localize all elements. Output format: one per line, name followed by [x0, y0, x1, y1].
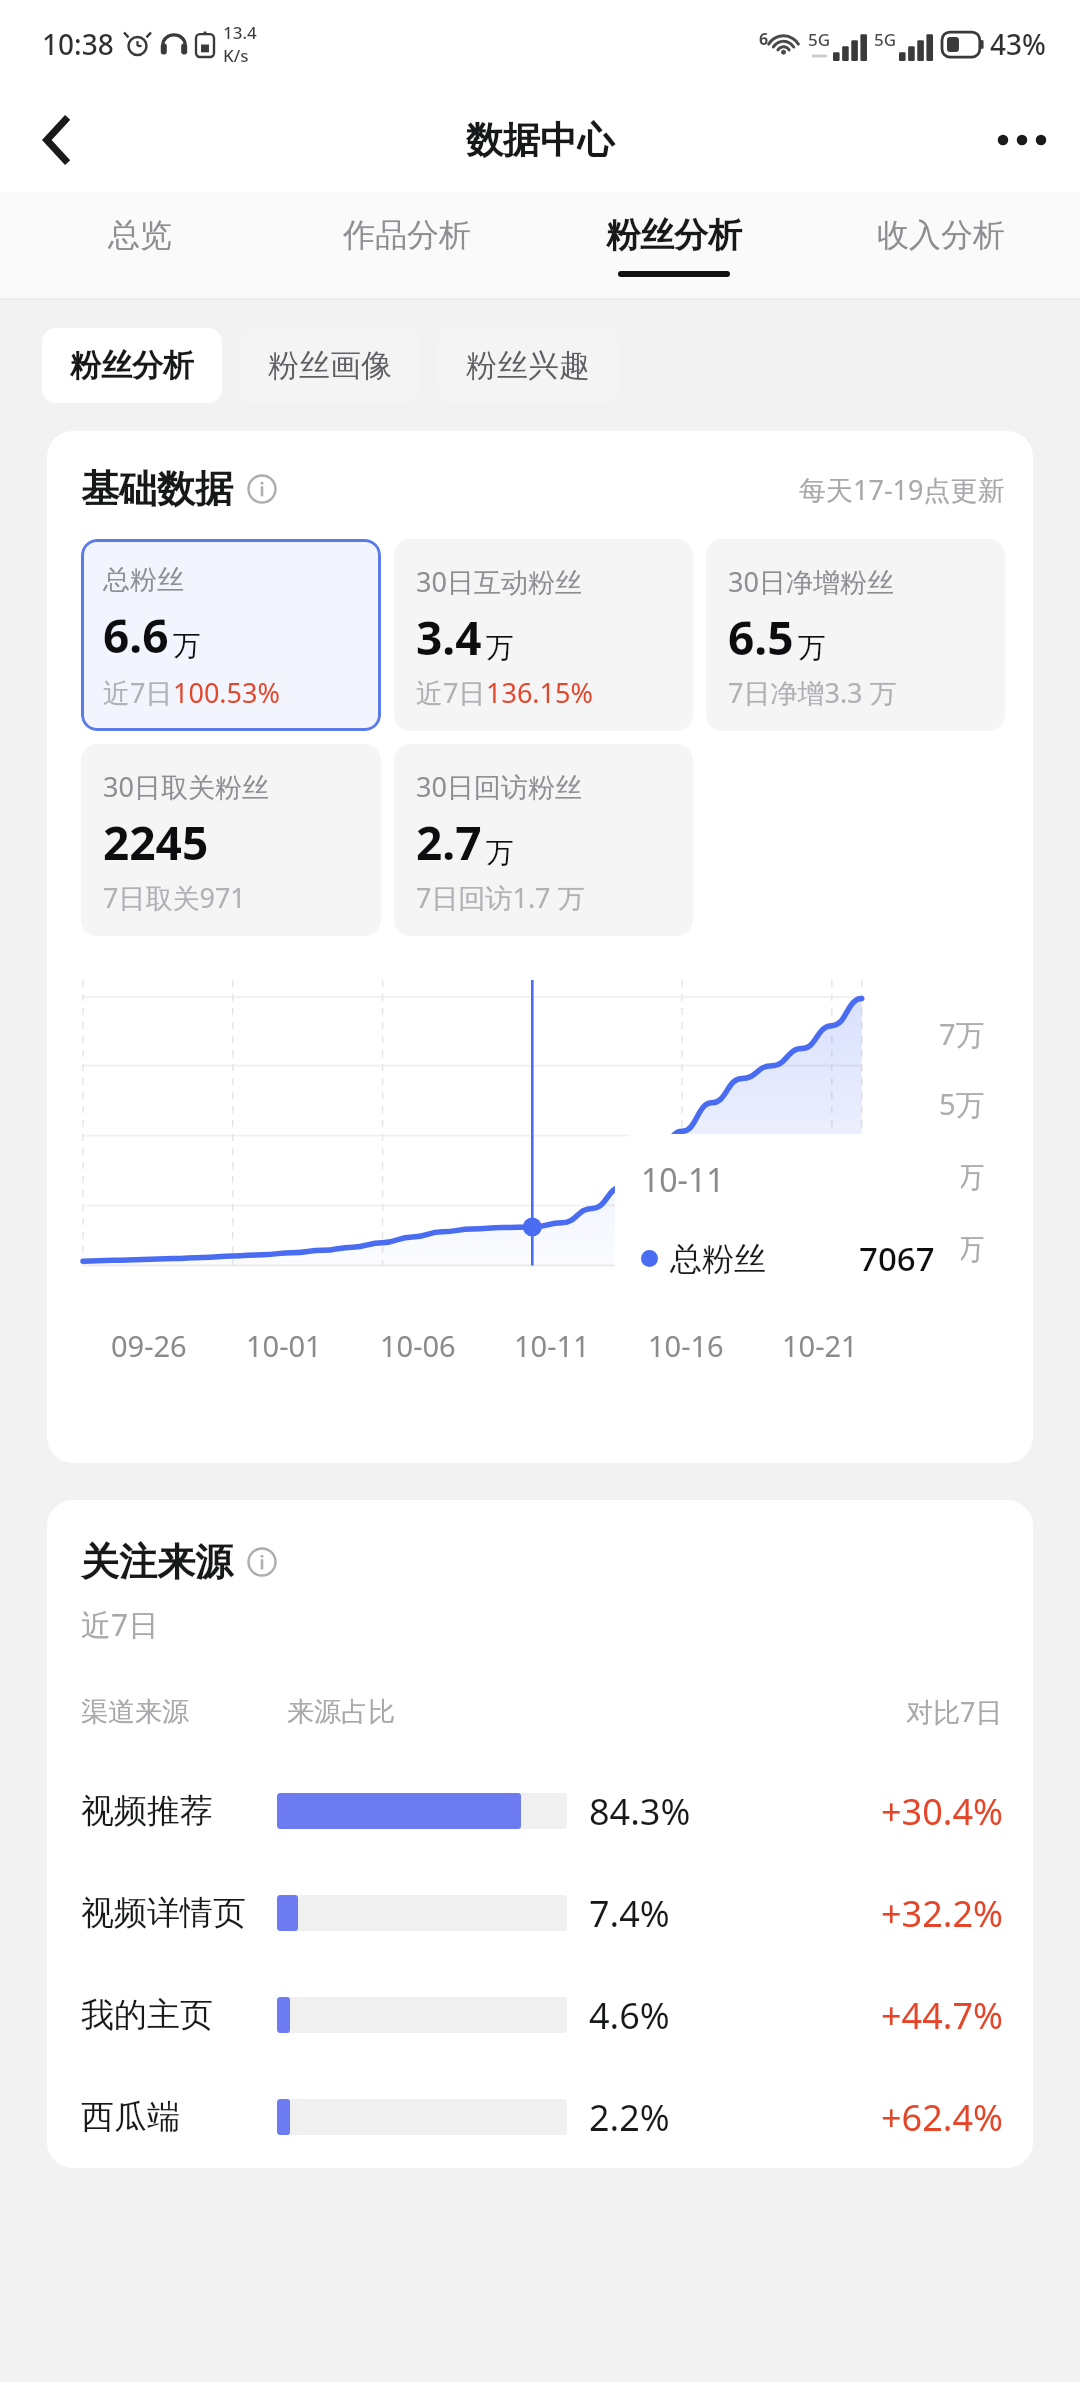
- staticText: K/s: [223, 44, 249, 67]
- button[interactable]: More options: [984, 102, 1060, 178]
- staticText: 总览: [108, 215, 172, 255]
- staticText: 6: [759, 28, 769, 50]
- button[interactable]: 30日互动粉丝: [394, 539, 693, 731]
- button[interactable]: 粉丝分析: [540, 192, 807, 298]
- staticText: 10-11: [514, 1326, 590, 1365]
- staticText: 5万: [939, 1084, 1005, 1124]
- staticText: 3.4: [416, 606, 482, 669]
- button[interactable]: 粉丝分析: [42, 328, 222, 403]
- staticText: 30日回访粉丝: [416, 768, 582, 805]
- staticText: 2万: [939, 1228, 1005, 1268]
- staticText: 2.7: [416, 811, 482, 874]
- staticText: 7日净增3.3 万: [728, 674, 897, 711]
- button[interactable]: 总览: [6, 192, 273, 298]
- staticText: 5G: [808, 28, 831, 51]
- staticText: 7日取关971: [103, 879, 246, 916]
- staticText: 100.53%: [173, 674, 280, 711]
- staticText: 数据中心: [466, 117, 614, 164]
- staticText: 10-01: [246, 1326, 322, 1365]
- staticText: 30日净增粉丝: [728, 563, 894, 600]
- staticText: 近7日: [416, 674, 486, 711]
- staticText: 2.2%: [589, 2093, 670, 2142]
- staticText: 粉丝分析: [606, 214, 742, 257]
- button[interactable]: 粉丝兴趣: [438, 328, 618, 403]
- staticText: 总粉丝: [103, 563, 184, 597]
- staticText: 总粉丝: [670, 1239, 766, 1279]
- button[interactable]: 作品分析: [273, 192, 540, 298]
- button[interactable]: 总粉丝: [81, 539, 381, 731]
- staticText: 30日取关粉丝: [103, 768, 269, 805]
- staticText: +32.2%: [881, 1889, 1003, 1938]
- button[interactable]: 30日取关粉丝: [81, 744, 381, 936]
- staticText: 136.15%: [486, 674, 593, 711]
- staticText: 6.6: [103, 604, 169, 667]
- button[interactable]: 视频详情页: [81, 1862, 1003, 1964]
- staticText: 7.4%: [589, 1889, 670, 1938]
- staticText: 13.4: [223, 21, 257, 44]
- staticText: 作品分析: [343, 215, 471, 255]
- staticText: 09-26: [111, 1326, 187, 1365]
- staticText: 近7日: [103, 674, 173, 711]
- staticText: 来源占比: [287, 1695, 395, 1729]
- button[interactable]: 收入分析: [807, 192, 1074, 298]
- staticText: 粉丝分析: [70, 346, 194, 385]
- staticText: 3万: [939, 1156, 1005, 1196]
- button[interactable]: 30日回访粉丝: [394, 744, 693, 936]
- staticText: 渠道来源: [81, 1695, 287, 1729]
- staticText: 每天17-19点更新: [799, 471, 1005, 508]
- staticText: 近7日: [81, 1604, 159, 1645]
- staticText: 西瓜端: [81, 2096, 277, 2138]
- staticText: 43%: [990, 25, 1046, 63]
- staticText: 6.5: [728, 606, 794, 669]
- staticText: 基础数据: [81, 465, 233, 513]
- button[interactable]: Info: [247, 474, 277, 504]
- button[interactable]: 30日净增粉丝: [706, 539, 1005, 731]
- staticText: 视频推荐: [81, 1790, 277, 1832]
- staticText: 30日互动粉丝: [416, 563, 582, 600]
- staticText: 2245: [103, 811, 209, 874]
- staticText: 7日回访1.7 万: [416, 879, 585, 916]
- staticText: 10-16: [648, 1326, 724, 1365]
- button[interactable]: 视频推荐: [81, 1760, 1003, 1862]
- staticText: 10-11: [641, 1158, 725, 1202]
- staticText: +62.4%: [881, 2093, 1003, 2142]
- staticText: 视频详情页: [81, 1892, 277, 1934]
- button[interactable]: 我的主页: [81, 1964, 1003, 2066]
- button[interactable]: 西瓜端: [81, 2066, 1003, 2168]
- staticText: 7万: [939, 1014, 1005, 1054]
- staticText: 收入分析: [877, 215, 1005, 255]
- staticText: 万: [486, 630, 514, 665]
- staticText: 10-21: [782, 1326, 858, 1365]
- staticText: 对比7日: [906, 1693, 1003, 1730]
- staticText: 我的主页: [81, 1994, 277, 2036]
- button[interactable]: Info: [247, 1547, 277, 1577]
- button[interactable]: Back: [18, 102, 94, 178]
- staticText: 10-06: [380, 1326, 456, 1365]
- staticText: 7067: [859, 1236, 935, 1281]
- staticText: 关注来源: [81, 1538, 233, 1586]
- staticText: 万: [173, 628, 201, 663]
- staticText: 万: [798, 630, 826, 665]
- staticText: 万: [486, 835, 514, 870]
- staticText: +44.7%: [881, 1991, 1003, 2040]
- staticText: 粉丝兴趣: [466, 346, 590, 385]
- staticText: 84.3%: [589, 1787, 691, 1836]
- staticText: 粉丝画像: [268, 346, 392, 385]
- staticText: +30.4%: [881, 1787, 1003, 1836]
- staticText: 5G: [874, 28, 897, 51]
- staticText: 10:38: [42, 25, 114, 63]
- staticText: 4.6%: [589, 1991, 670, 2040]
- button[interactable]: 粉丝画像: [240, 328, 420, 403]
